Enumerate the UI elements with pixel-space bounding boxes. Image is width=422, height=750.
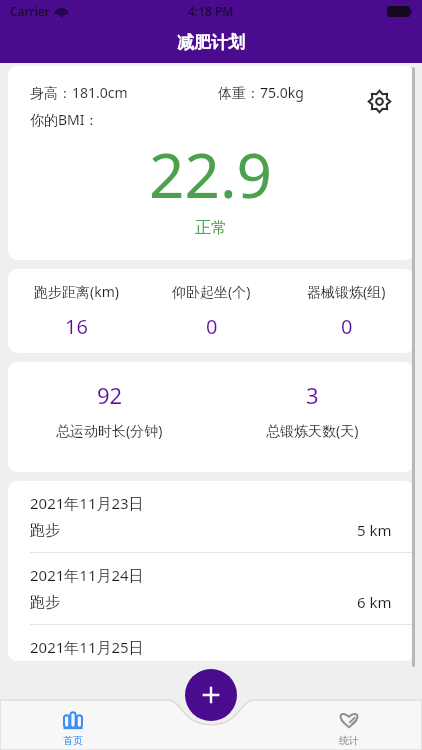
staticText: Carrier	[10, 3, 50, 19]
staticText: 5 km	[357, 520, 392, 540]
staticText: 器械锻炼(组)	[307, 282, 386, 301]
button[interactable]: 2021年11月24日	[8, 553, 414, 624]
button[interactable]: 添加记录	[185, 669, 237, 721]
button[interactable]: 设置	[362, 84, 396, 118]
button[interactable]: 统计	[321, 708, 377, 747]
staticText: 6 km	[357, 592, 392, 612]
staticText: 总锻炼天数(天)	[266, 421, 359, 440]
button[interactable]: 2021年11月25日	[8, 625, 414, 661]
button[interactable]: 92	[8, 362, 211, 458]
button[interactable]: 首页	[45, 708, 101, 747]
staticText: 正常	[195, 218, 227, 238]
staticText: 3	[306, 380, 319, 410]
staticText: 0	[206, 313, 218, 340]
staticText: 身高：181.0cm	[30, 83, 128, 102]
staticText: 16	[65, 313, 88, 340]
button[interactable]: 跑步距离(km)	[8, 269, 144, 353]
staticText: 统计	[339, 734, 359, 747]
button[interactable]: 仰卧起坐(个)	[144, 269, 279, 353]
staticText: 92	[97, 380, 123, 410]
staticText: 2021年11月23日	[30, 493, 144, 513]
button[interactable]: 3	[211, 362, 414, 458]
staticText: 2021年11月25日	[30, 637, 144, 657]
staticText: 你的BMI：	[30, 110, 99, 129]
staticText: 首页	[63, 734, 83, 747]
staticText: 22.9	[149, 132, 273, 216]
staticText: 跑步	[30, 593, 60, 612]
staticText: 减肥计划	[177, 32, 245, 53]
button[interactable]: 2021年11月23日	[8, 481, 414, 552]
staticText: 跑步	[30, 521, 60, 540]
button[interactable]: 器械锻炼(组)	[279, 269, 414, 353]
staticText: 跑步距离(km)	[34, 282, 119, 301]
staticText: 2021年11月24日	[30, 565, 144, 585]
staticText: 仰卧起坐(个)	[172, 282, 251, 301]
staticText: 体重：75.0kg	[218, 83, 304, 102]
staticText: 总运动时长(分钟)	[56, 421, 163, 440]
staticText: 4:18 PM	[188, 3, 234, 19]
staticText: 0	[341, 313, 353, 340]
